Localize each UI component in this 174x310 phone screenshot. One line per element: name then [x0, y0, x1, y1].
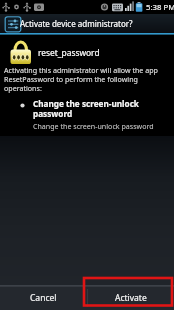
button[interactable]: Cancel: [0, 286, 87, 310]
staticText: Change the screen-unlock password: [33, 121, 154, 131]
staticText: reset_password: [38, 47, 100, 58]
staticText: Activate device administrator?: [20, 18, 133, 29]
staticText: Change the screen-unlock password: [33, 98, 139, 119]
staticText: Cancel: [30, 292, 57, 304]
staticText: Activating this administrator will allow…: [4, 65, 158, 93]
staticText: 5:38 PM: [146, 2, 174, 13]
staticText: Activate: [115, 292, 147, 304]
button[interactable]: Activate: [87, 286, 174, 310]
